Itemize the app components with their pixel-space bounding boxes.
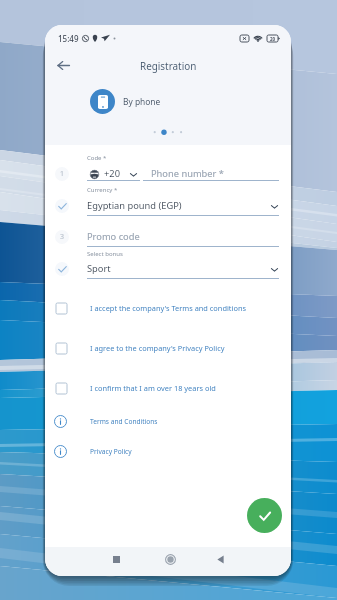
- staticText: I agree to the company's Privacy Policy: [90, 343, 225, 353]
- button[interactable]: Back: [210, 549, 230, 569]
- button[interactable]: I agree to the company's Privacy Policy: [52, 339, 281, 357]
- staticText: Code *: [87, 154, 107, 162]
- staticText: 15:49: [58, 33, 79, 44]
- staticText: Phone number *: [151, 167, 224, 180]
- button[interactable]: [90, 89, 115, 114]
- button[interactable]: Recents: [106, 549, 126, 569]
- staticText: 1: [60, 169, 65, 179]
- staticText: Egyptian pound (EGP): [87, 199, 182, 212]
- button[interactable]: I accept the company's Terms and conditi…: [52, 299, 281, 317]
- button[interactable]: Phone number *: [151, 165, 279, 181]
- button[interactable]: Confirm registration: [247, 498, 282, 533]
- button[interactable]: Home: [160, 549, 180, 569]
- staticText: I accept the company's Terms and conditi…: [90, 303, 247, 313]
- staticText: 3: [60, 232, 65, 242]
- staticText: By phone: [123, 96, 161, 107]
- staticText: Sport: [87, 262, 111, 275]
- staticText: Registration: [140, 59, 197, 72]
- staticText: Terms and Conditions: [90, 417, 158, 426]
- staticText: +20: [104, 167, 120, 180]
- staticText: Promo code: [87, 230, 140, 243]
- staticText: 20: [270, 36, 276, 42]
- staticText: Select bonus: [87, 250, 123, 258]
- staticText: I confirm that I am over 18 years old: [90, 383, 216, 393]
- staticText: Currency *: [87, 186, 118, 194]
- button[interactable]: +20: [90, 166, 138, 182]
- button[interactable]: Privacy Policy: [52, 442, 281, 460]
- staticText: Privacy Policy: [90, 447, 132, 456]
- button[interactable]: Terms and Conditions: [52, 412, 281, 430]
- button[interactable]: Back: [51, 53, 75, 77]
- button[interactable]: Sport: [87, 261, 279, 277]
- button[interactable]: I confirm that I am over 18 years old: [52, 379, 281, 397]
- button[interactable]: Promo code: [87, 228, 279, 244]
- button[interactable]: Egyptian pound (EGP): [87, 198, 279, 214]
